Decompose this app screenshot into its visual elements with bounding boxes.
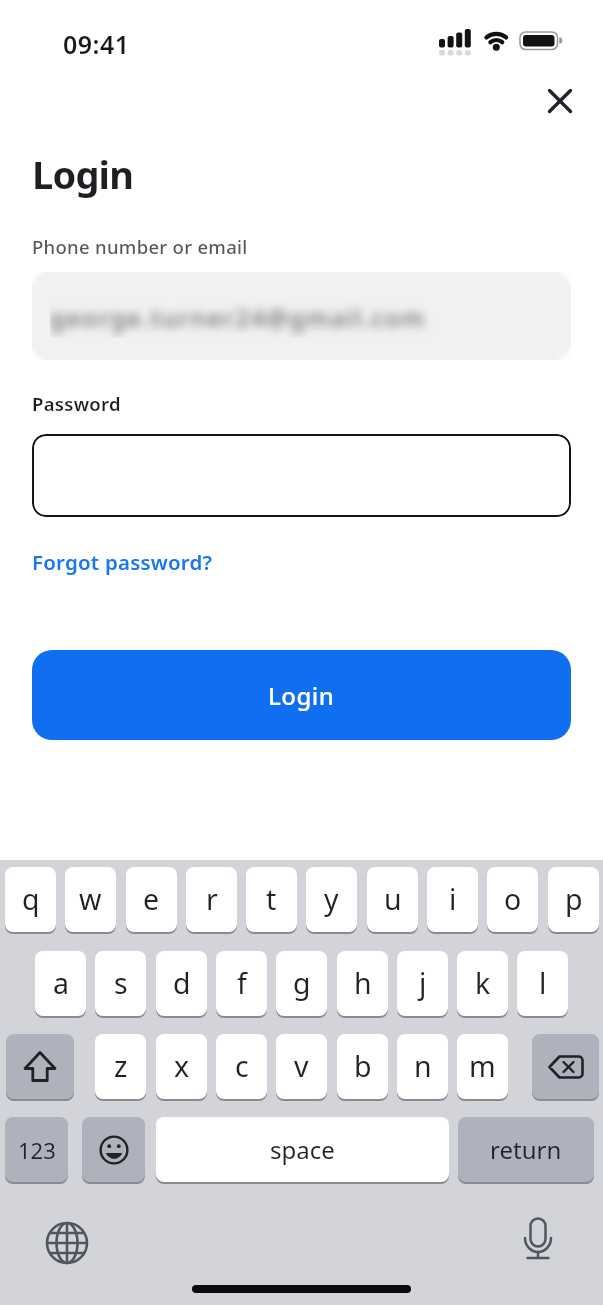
staticText: m — [469, 1047, 496, 1086]
button[interactable] — [32, 434, 571, 517]
staticText: u — [384, 880, 402, 919]
button[interactable]: v — [276, 1034, 327, 1099]
button[interactable]: n — [397, 1034, 448, 1099]
staticText: t — [266, 880, 277, 919]
staticText: 123 — [18, 1135, 56, 1165]
staticText: r — [206, 880, 218, 919]
staticText: j — [419, 964, 427, 1003]
staticText: Login — [268, 679, 335, 712]
button[interactable]: q — [5, 867, 56, 932]
staticText: x — [174, 1047, 190, 1086]
button[interactable]: j — [397, 951, 448, 1016]
staticText: i — [449, 880, 457, 919]
staticText: Phone number or email — [32, 234, 248, 259]
button[interactable]: k — [457, 951, 508, 1016]
staticText: q — [22, 880, 40, 919]
button[interactable]: m — [457, 1034, 508, 1099]
staticText: 09:41 — [63, 27, 130, 61]
button[interactable]: f — [216, 951, 267, 1016]
button[interactable]: z — [95, 1034, 146, 1099]
button[interactable]: o — [487, 867, 538, 932]
button[interactable] — [514, 1215, 562, 1263]
staticText: space — [270, 1133, 335, 1166]
staticText: v — [294, 1047, 309, 1086]
button[interactable]: u — [367, 867, 418, 932]
staticText: s — [114, 964, 128, 1003]
button[interactable]: s — [95, 951, 146, 1016]
staticText: d — [173, 964, 191, 1003]
button[interactable]: r — [186, 867, 237, 932]
staticText: w — [79, 880, 102, 919]
staticText: c — [235, 1047, 249, 1086]
button[interactable]: 123 — [5, 1117, 68, 1182]
staticText: Login — [32, 148, 134, 200]
staticText: f — [237, 964, 247, 1003]
staticText: y — [324, 880, 339, 919]
button[interactable]: y — [306, 867, 357, 932]
staticText: n — [414, 1047, 432, 1086]
button[interactable]: x — [156, 1034, 207, 1099]
button[interactable] — [41, 1217, 92, 1268]
staticText: george.turner24@gmail.com — [50, 301, 426, 334]
button[interactable]: t — [246, 867, 297, 932]
button[interactable]: p — [548, 867, 599, 932]
button[interactable] — [82, 1117, 145, 1182]
staticText: e — [143, 880, 160, 919]
button[interactable]: d — [156, 951, 207, 1016]
button[interactable]: Login — [32, 650, 571, 740]
button[interactable] — [541, 82, 578, 119]
button[interactable] — [6, 1034, 74, 1099]
staticText: p — [565, 880, 583, 919]
staticText: h — [354, 964, 372, 1003]
staticText: o — [504, 880, 522, 919]
button[interactable]: i — [427, 867, 478, 932]
staticText: k — [475, 964, 491, 1003]
button[interactable]: a — [35, 951, 86, 1016]
button[interactable]: c — [216, 1034, 267, 1099]
button[interactable]: b — [337, 1034, 388, 1099]
staticText: a — [53, 964, 69, 1003]
button[interactable]: space — [156, 1117, 449, 1182]
button[interactable]: h — [337, 951, 388, 1016]
button[interactable]: w — [65, 867, 116, 932]
staticText: z — [114, 1047, 128, 1086]
staticText: Password — [32, 391, 121, 416]
button[interactable]: l — [517, 951, 568, 1016]
button[interactable]: return — [458, 1117, 594, 1182]
staticText: b — [354, 1047, 372, 1086]
staticText: g — [293, 964, 311, 1003]
button[interactable] — [532, 1034, 599, 1099]
staticText: return — [490, 1133, 562, 1166]
button[interactable]: e — [126, 867, 177, 932]
button[interactable]: g — [276, 951, 327, 1016]
staticText: l — [539, 964, 547, 1003]
